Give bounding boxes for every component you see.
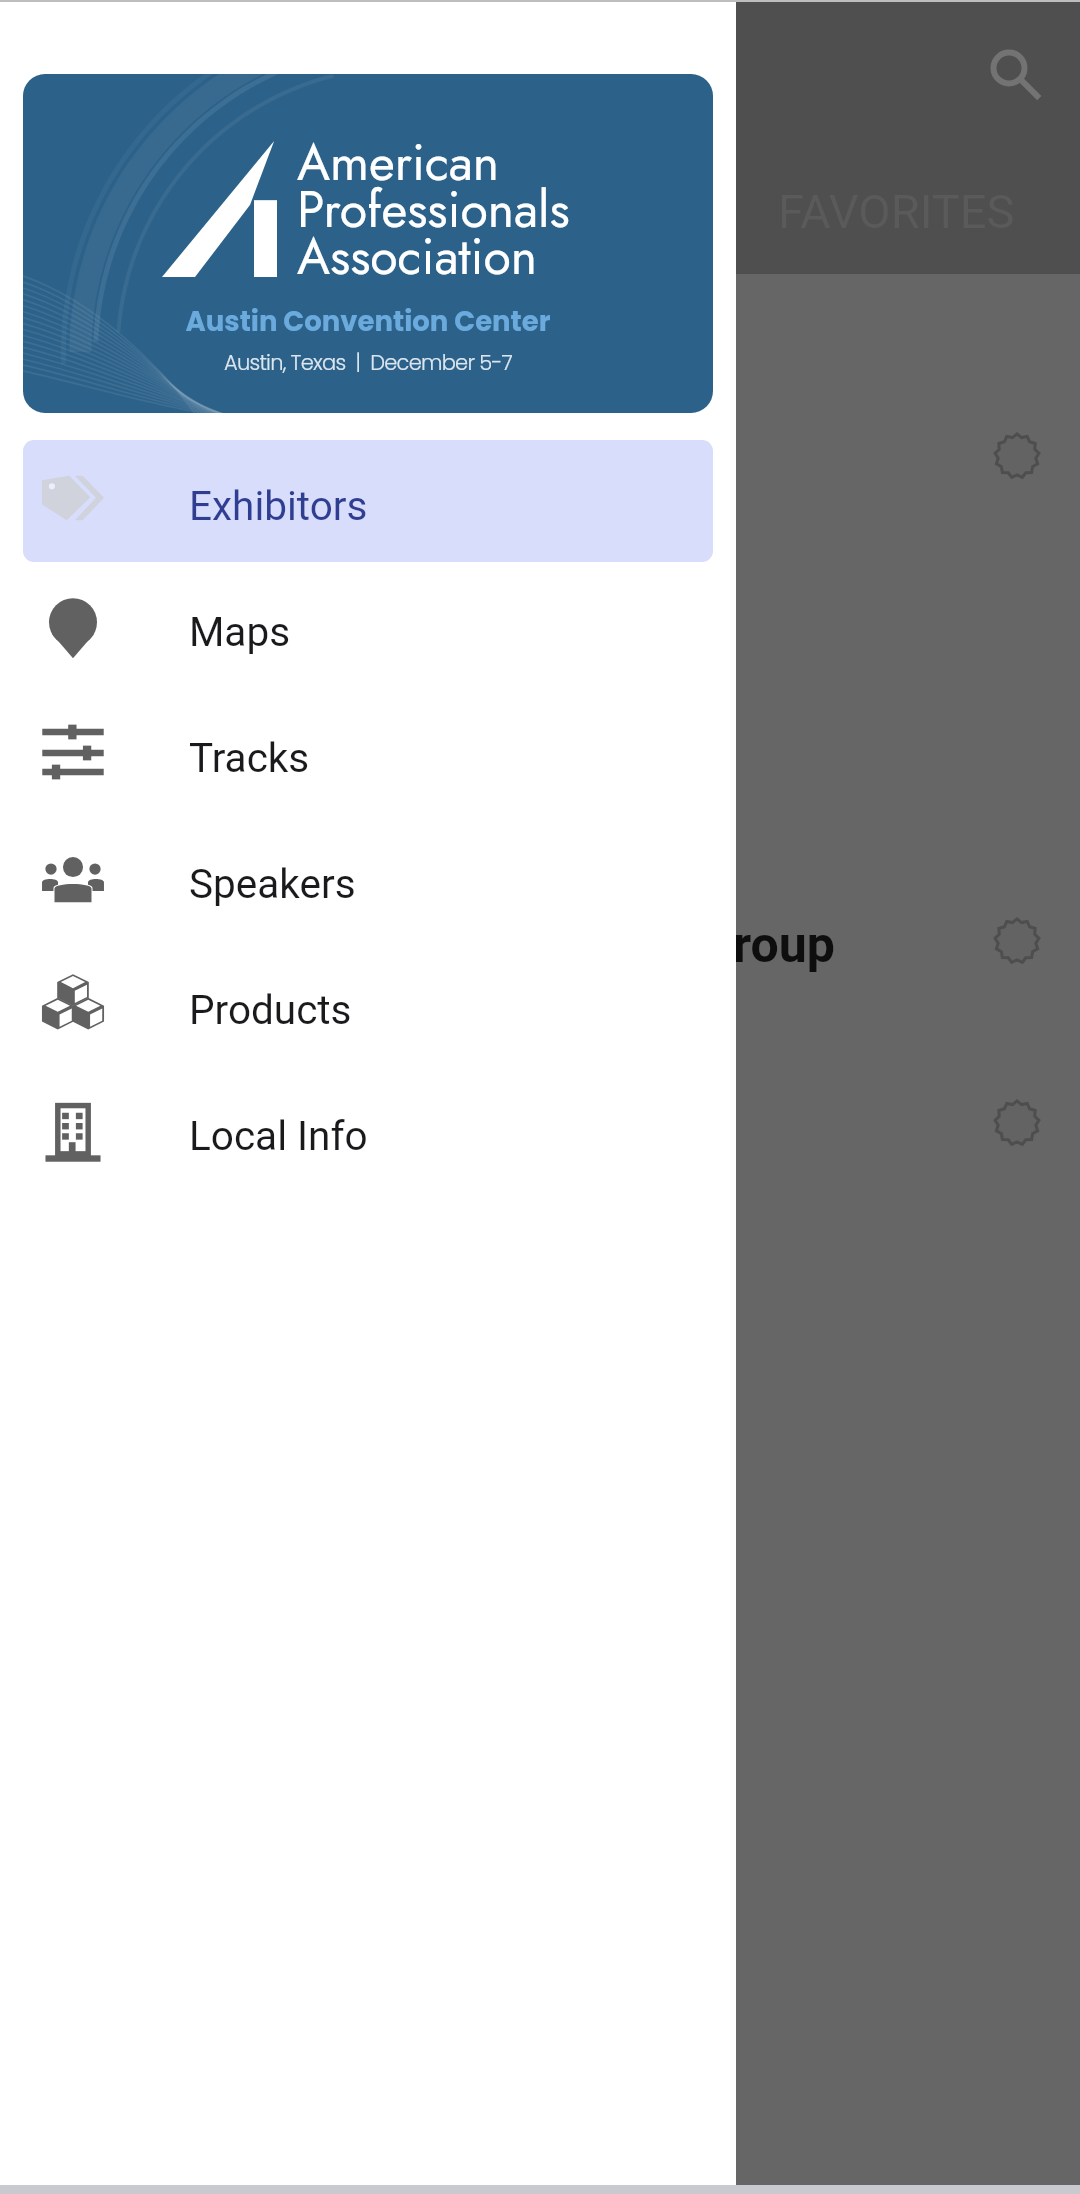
staticText: Speakers xyxy=(189,860,356,907)
button[interactable]: Maps xyxy=(23,566,713,688)
button[interactable]: Products xyxy=(23,944,713,1066)
button[interactable]: Speakers xyxy=(23,818,713,940)
other: Badge xyxy=(993,917,1041,965)
button[interactable]: Exhibitors xyxy=(23,440,713,562)
staticText: Products xyxy=(189,986,352,1033)
staticText: Maps xyxy=(189,608,291,655)
staticText: American Professionals Association xyxy=(297,126,570,293)
staticText: Austin Convention Center xyxy=(23,302,713,340)
button[interactable]: Local Info xyxy=(23,1070,713,1192)
other: Badge xyxy=(993,432,1041,480)
staticText: FAVORITES xyxy=(778,184,1015,239)
staticText: roup xyxy=(733,916,835,975)
button[interactable]: Search xyxy=(976,35,1042,101)
staticText: Austin, Texas | December 5-7 xyxy=(23,348,713,377)
other: Badge xyxy=(993,1099,1041,1147)
button[interactable]: Tracks xyxy=(23,692,713,814)
staticText: Local Info xyxy=(189,1112,368,1159)
staticText: Exhibitors xyxy=(189,482,368,529)
staticText: Tracks xyxy=(189,734,310,781)
button[interactable]: FAVORITES xyxy=(724,161,1068,261)
button[interactable]: American Professionals Association xyxy=(23,74,713,413)
